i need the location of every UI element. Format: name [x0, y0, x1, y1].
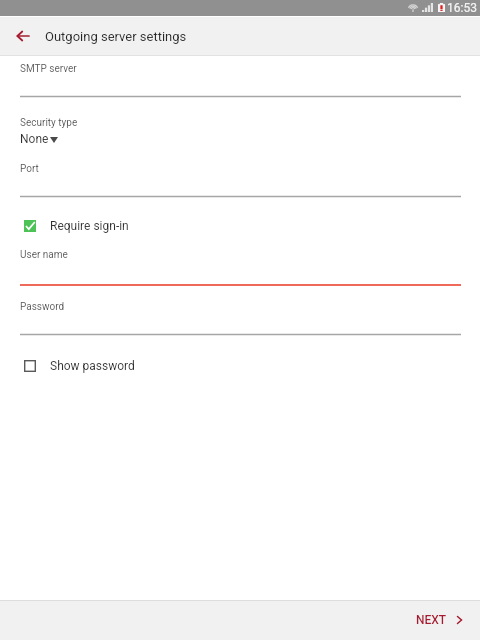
staticText: Security type: [20, 117, 78, 129]
staticText: Outgoing server settings: [45, 29, 187, 44]
staticText: None: [20, 132, 49, 146]
staticText: User name: [20, 249, 68, 261]
button[interactable]: Show password: [0, 353, 480, 378]
button[interactable]: Navigate up: [10, 23, 36, 49]
button[interactable]: Require sign-in: [0, 213, 480, 238]
staticText: NEXT: [416, 613, 447, 627]
staticText: Password: [20, 301, 65, 313]
staticText: 16:53: [447, 1, 477, 15]
button[interactable]: None: [20, 129, 64, 145]
button[interactable]: NEXT: [416, 613, 462, 627]
staticText: SMTP server: [20, 63, 77, 75]
staticText: Show password: [50, 359, 135, 373]
staticText: Port: [20, 163, 39, 175]
staticText: Require sign-in: [50, 219, 129, 233]
